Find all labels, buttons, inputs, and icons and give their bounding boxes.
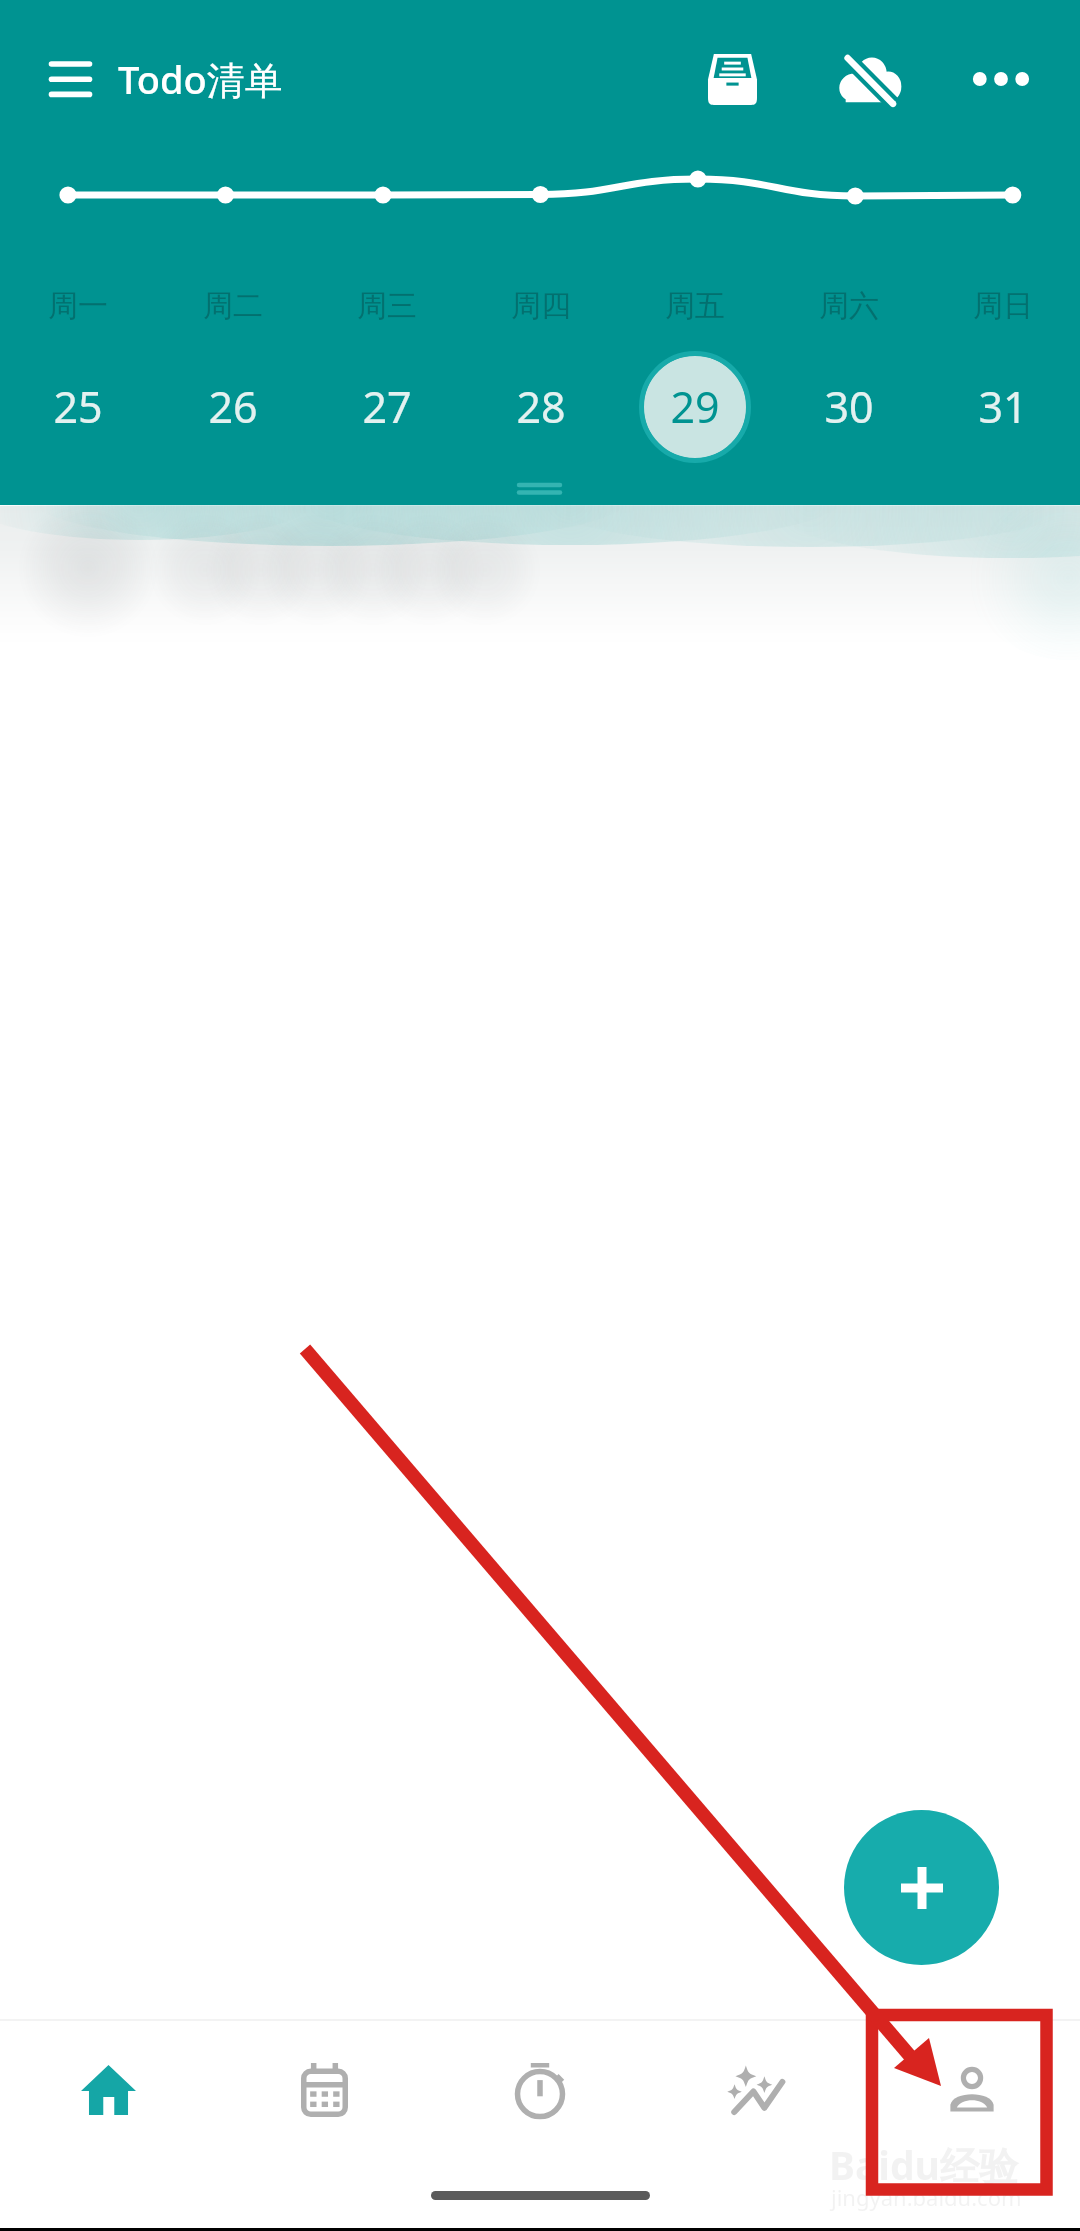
staticText: 30 bbox=[824, 377, 874, 436]
button[interactable]: Focus timer bbox=[432, 2021, 648, 2158]
staticText: 28 bbox=[516, 377, 566, 436]
button[interactable]: More options bbox=[951, 20, 1051, 138]
button[interactable]: 周六 30 bbox=[772, 265, 926, 475]
button[interactable]: Menu bbox=[20, 20, 120, 138]
staticText: 周六 bbox=[819, 287, 879, 325]
staticText: 周二 bbox=[203, 287, 263, 325]
button[interactable]: 周一 25 bbox=[0, 265, 155, 475]
button[interactable]: Home bbox=[0, 2021, 216, 2158]
staticText: 周五 bbox=[665, 287, 725, 325]
staticText: Baidu经验 bbox=[829, 2138, 1018, 2191]
button[interactable]: 周三 27 bbox=[310, 265, 464, 475]
button[interactable]: 周二 26 bbox=[155, 265, 310, 475]
button[interactable]: Profile bbox=[864, 2021, 1080, 2158]
staticText: 27 bbox=[362, 377, 412, 436]
staticText: 周一 bbox=[48, 287, 108, 325]
staticText: 周四 bbox=[511, 287, 571, 325]
staticText: 周日 bbox=[973, 287, 1033, 325]
button[interactable]: 周四 28 bbox=[464, 265, 618, 475]
button[interactable]: 周五 29 bbox=[618, 265, 772, 475]
staticText: 31 bbox=[978, 377, 1028, 436]
button[interactable]: 周日 31 bbox=[926, 265, 1080, 475]
staticText: 25 bbox=[53, 377, 103, 436]
staticText: 周三 bbox=[357, 287, 417, 325]
staticText: jingyan.baidu.com bbox=[831, 2182, 1022, 2212]
staticText: 26 bbox=[208, 377, 258, 436]
button[interactable]: Add task bbox=[844, 1810, 999, 1965]
staticText: Todo清单 bbox=[118, 53, 283, 105]
button[interactable]: Archive bbox=[682, 20, 782, 138]
button[interactable]: Cloud sync off bbox=[820, 20, 920, 138]
staticText: 29 bbox=[670, 377, 720, 436]
button[interactable]: Insights bbox=[648, 2021, 864, 2158]
button[interactable]: Calendar bbox=[216, 2021, 432, 2158]
